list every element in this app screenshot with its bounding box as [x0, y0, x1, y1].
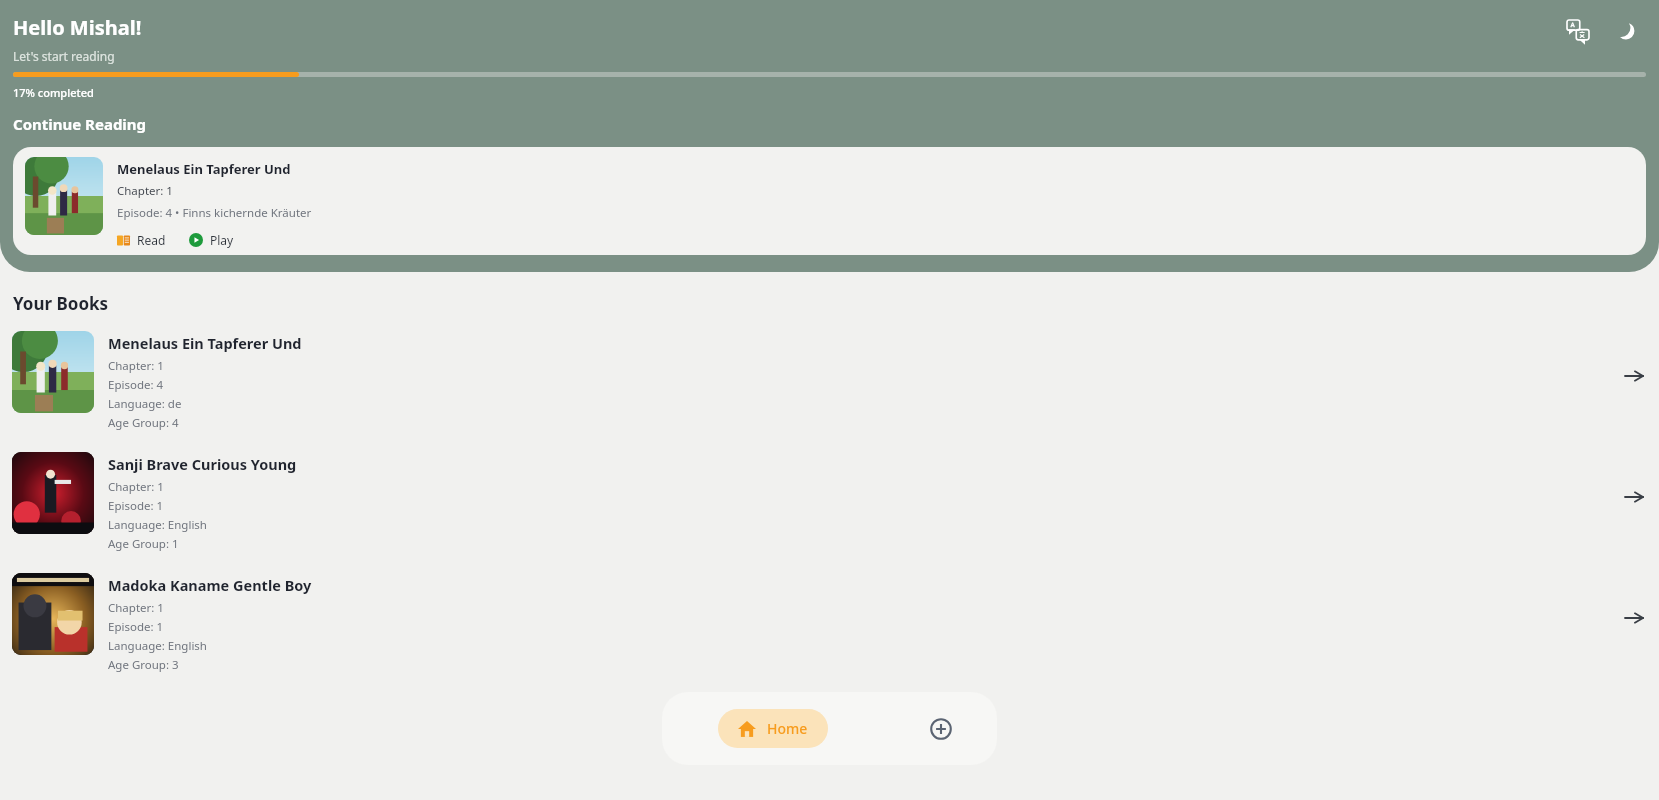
staticText: Madoka Kaname Gentle Boy — [108, 575, 312, 595]
button[interactable]: Play — [189, 230, 234, 250]
staticText: Chapter: 1 — [108, 358, 164, 374]
button[interactable]: Add book — [921, 709, 961, 749]
button[interactable]: Menelaus Ein Tapferer Und — [0, 331, 1659, 431]
staticText: Language: English — [108, 517, 207, 533]
button[interactable]: Translate — [1561, 14, 1595, 48]
staticText: Chapter: 1 — [108, 479, 164, 495]
staticText: Age Group: 4 — [108, 415, 179, 431]
staticText: Language: English — [108, 638, 207, 654]
staticText: 17% completed — [13, 85, 94, 100]
staticText: Play — [210, 232, 234, 248]
button[interactable]: Open Madoka Kaname Gentle Boy — [1621, 605, 1647, 631]
staticText: Menelaus Ein Tapferer Und — [108, 333, 302, 353]
staticText: Your Books — [13, 292, 109, 315]
button[interactable]: Home — [718, 709, 828, 748]
staticText: Episode: 4 • Finns kichernde Kräuter — [117, 205, 312, 221]
button[interactable]: Open Sanji Brave Curious Young — [1621, 484, 1647, 510]
staticText: Episode: 1 — [108, 619, 164, 635]
staticText: Age Group: 3 — [108, 657, 179, 673]
button[interactable]: Open Menelaus Ein Tapferer Und — [1621, 363, 1647, 389]
button[interactable]: Sanji Brave Curious Young — [0, 452, 1659, 552]
staticText: Episode: 4 — [108, 377, 164, 393]
staticText: Continue Reading — [13, 114, 147, 134]
staticText: Let's start reading — [13, 48, 115, 64]
staticText: Age Group: 1 — [108, 536, 179, 552]
button[interactable]: Dark mode — [1609, 14, 1643, 48]
button[interactable]: Read — [117, 230, 166, 250]
staticText: Home — [767, 719, 808, 738]
staticText: Language: de — [108, 396, 182, 412]
button[interactable]: Menelaus Ein Tapferer Und — [13, 147, 1646, 255]
button[interactable]: Madoka Kaname Gentle Boy — [0, 573, 1659, 673]
staticText: Read — [137, 232, 166, 248]
staticText: Chapter: 1 — [117, 183, 173, 199]
staticText: Episode: 1 — [108, 498, 164, 514]
staticText: Menelaus Ein Tapferer Und — [117, 160, 291, 178]
staticText: Sanji Brave Curious Young — [108, 454, 297, 474]
staticText: Hello Mishal! — [13, 14, 142, 41]
staticText: Chapter: 1 — [108, 600, 164, 616]
